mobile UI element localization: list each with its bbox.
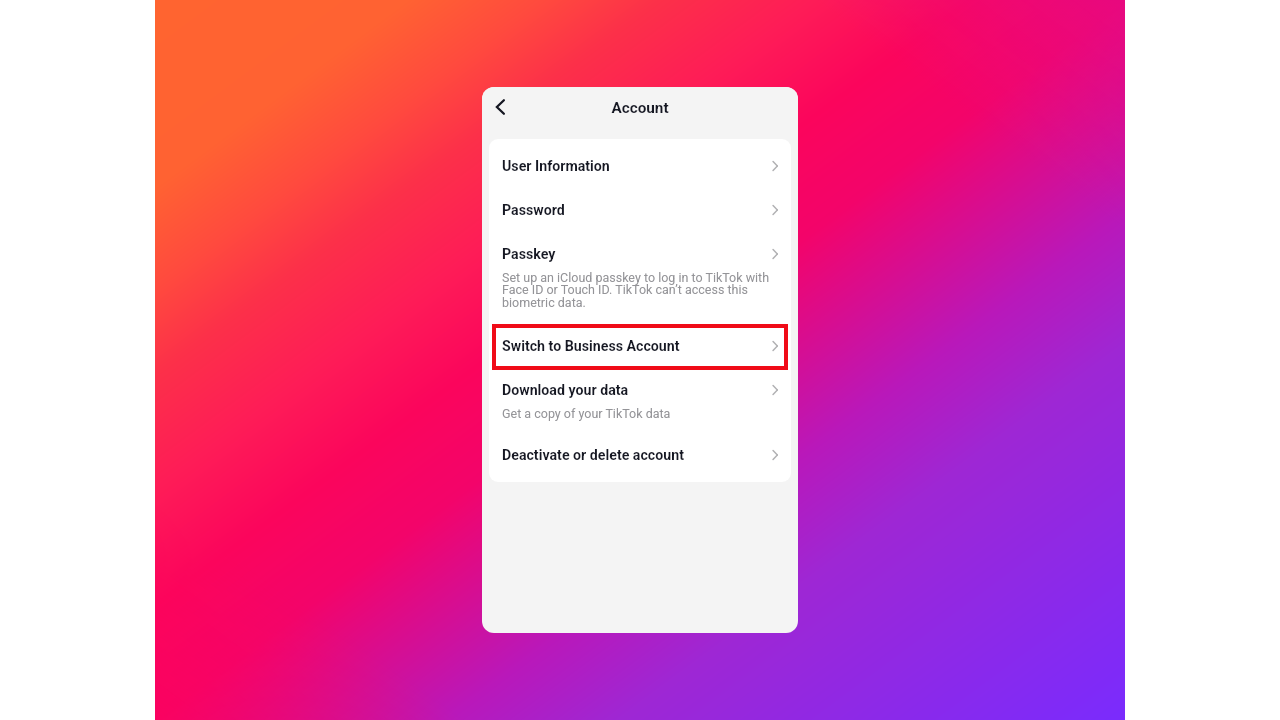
staticText: Get a copy of your TikTok data xyxy=(502,406,774,421)
staticText: Switch to Business Account xyxy=(502,338,680,355)
staticText: User Information xyxy=(502,158,610,175)
staticText: Download your data xyxy=(502,382,629,399)
staticText: Account xyxy=(611,99,669,117)
button[interactable]: User Information xyxy=(489,144,791,188)
button[interactable]: Download your data xyxy=(489,368,791,412)
staticText: Set up an iCloud passkey to log in to Ti… xyxy=(502,270,774,310)
staticText: Password xyxy=(502,202,565,219)
staticText: Deactivate or delete account xyxy=(502,447,684,464)
button[interactable]: Deactivate or delete account xyxy=(489,433,791,477)
button[interactable]: Back xyxy=(482,90,516,124)
staticText: Passkey xyxy=(502,246,556,263)
button[interactable]: Passkey xyxy=(489,232,791,276)
button[interactable]: Password xyxy=(489,188,791,232)
button[interactable]: Switch to Business Account xyxy=(489,324,791,368)
